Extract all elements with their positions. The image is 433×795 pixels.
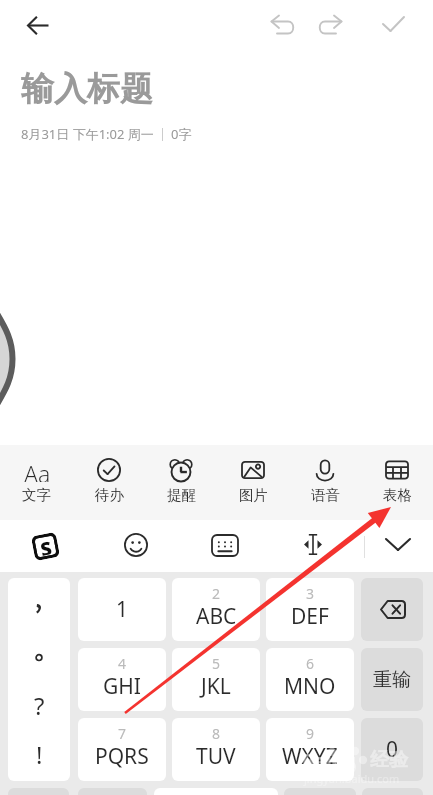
staticText: 语音	[311, 486, 340, 504]
staticText: S	[38, 536, 52, 556]
staticText: 0	[386, 735, 399, 764]
staticText: 2	[212, 584, 221, 603]
staticText: jingyan.baidu.com	[304, 771, 400, 786]
staticText: 3	[306, 584, 315, 603]
staticText: 5	[212, 654, 221, 673]
button[interactable]: Redo	[313, 7, 349, 43]
staticText: 文字	[22, 486, 51, 504]
staticText: WXYZ	[282, 742, 338, 771]
staticText: 4	[118, 654, 127, 673]
staticText: 输入标题	[21, 68, 153, 110]
button[interactable]: Sogou input	[31, 532, 59, 560]
staticText: 经验	[370, 748, 408, 772]
staticText: 7	[118, 724, 127, 743]
button[interactable]: 1	[78, 578, 166, 641]
staticText: 表格	[383, 486, 412, 504]
staticText: Baidu	[302, 748, 357, 774]
staticText: PQRS	[95, 742, 149, 771]
button[interactable]: Move cursor	[297, 531, 329, 558]
staticText: ?	[34, 689, 45, 719]
staticText: MNO	[284, 672, 336, 701]
staticText: TUV	[196, 742, 236, 771]
staticText: !	[36, 738, 43, 768]
button[interactable]: 3	[266, 578, 354, 641]
button[interactable]: 4	[78, 648, 166, 711]
button[interactable]: 语音	[289, 445, 361, 520]
button[interactable]: Emoji	[124, 533, 148, 557]
staticText: 0字	[171, 125, 192, 143]
button[interactable]	[361, 578, 423, 641]
button[interactable]: 5	[172, 648, 260, 711]
button[interactable]: 提醒	[145, 445, 217, 520]
button[interactable]: 2	[172, 578, 260, 641]
button[interactable]: 6	[266, 648, 354, 711]
button[interactable]: ?	[8, 578, 70, 781]
staticText: GHI	[103, 672, 141, 701]
staticText: ABC	[196, 602, 237, 631]
button[interactable]: Aa	[0, 445, 73, 520]
button[interactable]: Keyboard layout	[211, 534, 239, 557]
staticText: 重输	[373, 668, 411, 692]
staticText: 6	[306, 654, 315, 673]
button[interactable]: 图片	[217, 445, 289, 520]
button[interactable]: 0	[361, 718, 423, 781]
button[interactable]: 待办	[73, 445, 145, 520]
button[interactable]: Done	[375, 7, 411, 43]
button[interactable]: 8	[172, 718, 260, 781]
staticText: 1	[116, 595, 129, 624]
button[interactable]: 7	[78, 718, 166, 781]
staticText: 提醒	[167, 486, 196, 504]
staticText: 9	[306, 724, 315, 743]
staticText: 8月31日 下午1:02 周一	[21, 125, 154, 143]
staticText: 图片	[239, 486, 268, 504]
button[interactable]: 表格	[361, 445, 433, 520]
button[interactable]: Back	[21, 10, 55, 40]
button[interactable]: Hide keyboard	[384, 533, 412, 555]
staticText: Aa	[24, 458, 51, 482]
button[interactable]: Undo	[264, 7, 300, 43]
staticText: DEF	[291, 602, 329, 631]
button[interactable]: 9	[266, 718, 354, 781]
staticText: JKL	[201, 672, 231, 701]
button[interactable]: 重输	[361, 648, 423, 711]
staticText: 8	[212, 724, 221, 743]
staticText: 待办	[95, 486, 124, 504]
